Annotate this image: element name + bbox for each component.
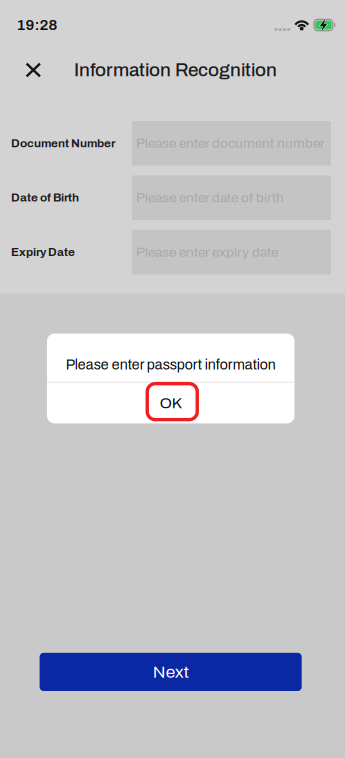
staticText: Please enter date of birth: [136, 190, 284, 205]
staticText: Date of Birth: [11, 191, 79, 204]
staticText: Next: [153, 662, 189, 681]
staticText: Information Recognition: [74, 60, 277, 80]
button[interactable]: Next: [40, 653, 302, 691]
button[interactable]: Please enter date of birth: [132, 175, 331, 220]
staticText: Document Number: [11, 137, 115, 150]
staticText: 19:28: [17, 17, 58, 33]
staticText: Please enter passport information: [66, 357, 276, 372]
button[interactable]: Please enter document number: [132, 121, 331, 166]
button[interactable]: OK: [47, 383, 294, 423]
staticText: Expiry Date: [11, 246, 75, 258]
staticText: OK: [160, 395, 182, 411]
button[interactable]: Close: [11, 50, 55, 90]
staticText: Please enter expiry date: [136, 245, 278, 259]
staticText: Please enter document number: [136, 136, 325, 151]
button[interactable]: Please enter expiry date: [132, 230, 331, 274]
